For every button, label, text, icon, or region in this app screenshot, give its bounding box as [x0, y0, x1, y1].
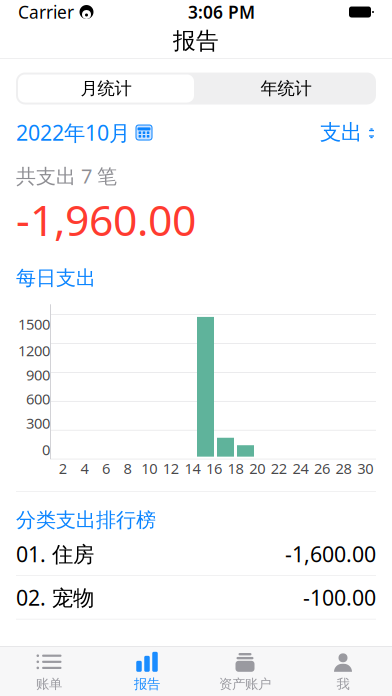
- button[interactable]: 支出: [320, 119, 376, 146]
- staticText: 报告: [173, 27, 219, 55]
- staticText: 年统计: [260, 78, 311, 99]
- staticText: 10: [141, 458, 157, 478]
- staticText: 28: [336, 458, 352, 478]
- staticText: 600: [26, 389, 50, 409]
- staticText: 分类支出排行榜: [16, 508, 156, 532]
- staticText: 报告: [134, 676, 160, 692]
- button[interactable]: 我: [294, 647, 392, 696]
- staticText: 支出: [320, 119, 362, 146]
- button[interactable]: 月统计: [16, 72, 196, 104]
- staticText: -1,600.00: [285, 540, 376, 568]
- staticText: 22: [271, 458, 287, 478]
- staticText: -1,960.00: [16, 191, 196, 248]
- staticText: 30: [357, 458, 373, 478]
- staticText: 01. 住房: [16, 540, 94, 568]
- staticText: 我: [336, 676, 349, 692]
- staticText: 账单: [36, 676, 62, 692]
- button[interactable]: 账单: [0, 647, 98, 696]
- staticText: 0: [42, 440, 50, 459]
- button[interactable]: 报告: [98, 647, 196, 696]
- staticText: -100.00: [303, 583, 376, 611]
- staticText: 共支出 7 笔: [16, 162, 117, 189]
- staticText: 300: [26, 413, 50, 433]
- staticText: 3:06 PM: [188, 0, 255, 23]
- button[interactable]: 2022年10月: [16, 118, 152, 147]
- button[interactable]: 01. 住房: [16, 532, 376, 576]
- button[interactable]: 资产账户: [196, 647, 294, 696]
- button[interactable]: 每日支出: [16, 266, 96, 290]
- staticText: 6: [102, 458, 110, 478]
- staticText: 资产账户: [219, 676, 271, 692]
- staticText: Carrier: [18, 0, 74, 23]
- staticText: 18: [228, 458, 244, 478]
- button[interactable]: 02. 宠物: [16, 576, 376, 619]
- staticText: 8: [124, 458, 132, 478]
- staticText: 4: [80, 458, 88, 478]
- staticText: 1200: [18, 341, 50, 360]
- staticText: 16: [206, 458, 222, 478]
- staticText: 14: [184, 458, 200, 478]
- staticText: 月统计: [80, 78, 131, 99]
- button[interactable]: 分类支出排行榜: [16, 508, 156, 532]
- staticText: 12: [163, 458, 179, 478]
- staticText: 20: [249, 458, 265, 478]
- staticText: 900: [26, 365, 50, 384]
- staticText: 1500: [18, 314, 50, 334]
- staticText: 24: [292, 458, 308, 478]
- staticText: 每日支出: [16, 266, 96, 290]
- staticText: 2022年10月: [16, 118, 130, 147]
- staticText: 02. 宠物: [16, 583, 94, 611]
- staticText: 26: [314, 458, 330, 478]
- button[interactable]: 年统计: [196, 72, 376, 104]
- staticText: 2: [59, 458, 67, 478]
